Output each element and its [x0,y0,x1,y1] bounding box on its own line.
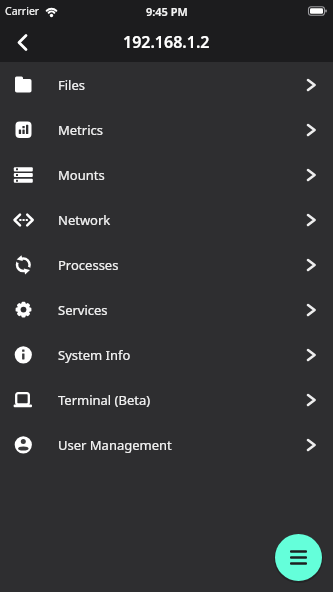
staticText: System Info [58,346,131,364]
staticText: Mounts [58,166,105,184]
button[interactable] [275,534,322,581]
staticText: Network [58,211,111,229]
staticText: Metrics [58,121,104,139]
staticText: Files [58,76,86,94]
button[interactable]: System Info [0,332,333,377]
staticText: Processes [58,256,119,274]
staticText: Terminal (Beta) [58,391,151,409]
button[interactable]: Processes [0,242,333,287]
button[interactable]: Files [0,62,333,107]
staticText: 9:45 PM [146,4,188,19]
staticText: Services [58,301,108,319]
staticText: Carrier [5,4,40,18]
staticText: 192.168.1.2 [123,31,210,53]
button[interactable]: User Management [0,422,333,467]
button[interactable]: Metrics [0,107,333,152]
button[interactable]: Network [0,197,333,242]
button[interactable]: Terminal (Beta) [0,377,333,422]
button[interactable] [8,28,36,56]
button[interactable]: Services [0,287,333,332]
staticText: User Management [58,436,172,454]
button[interactable]: Mounts [0,152,333,197]
